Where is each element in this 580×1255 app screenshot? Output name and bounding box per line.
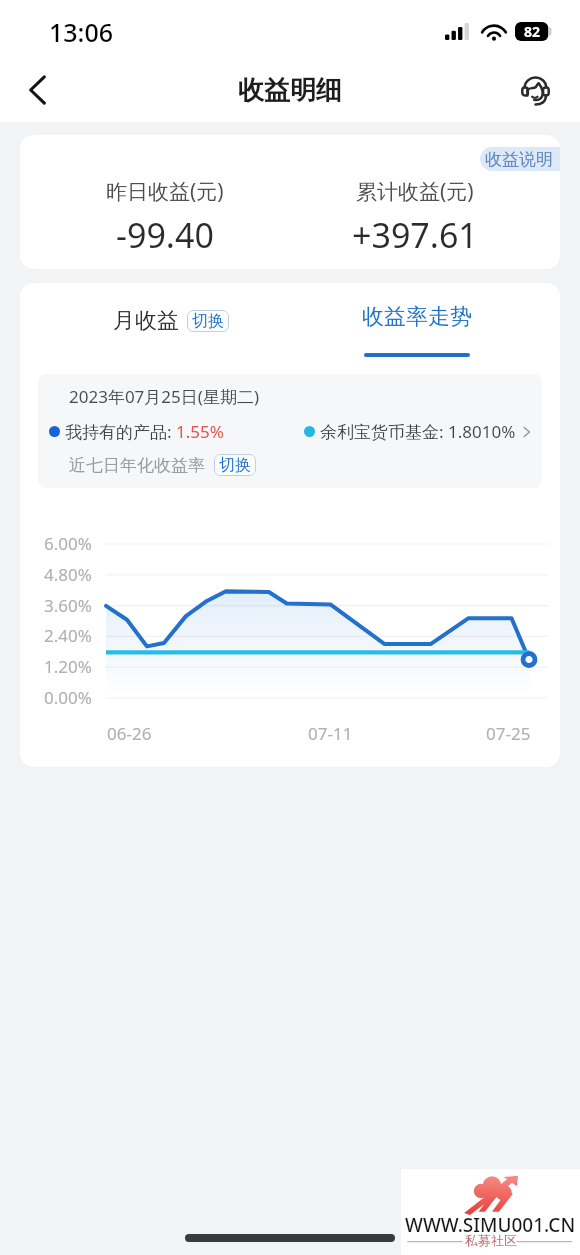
staticText: 累计收益(元): [356, 177, 474, 206]
staticText: 我持有的产品:: [65, 420, 176, 443]
button[interactable]: 切换: [187, 310, 229, 332]
staticText: 收益率走势: [362, 303, 472, 331]
staticText: 4.80%: [44, 563, 92, 586]
button[interactable]: 收益率走势: [290, 283, 560, 374]
staticText: 13:06: [49, 15, 114, 49]
staticText: 0.00%: [44, 686, 92, 709]
staticText: 06-26: [107, 722, 152, 745]
staticText: 07-25: [486, 722, 531, 745]
staticText: 07-11: [308, 722, 353, 745]
staticText: 近七日年化收益率: [69, 455, 205, 476]
staticText: 收益明细: [238, 74, 342, 107]
staticText: +397.61: [352, 212, 478, 258]
staticText: 余利宝货币基金: 1.8010%: [320, 420, 516, 443]
staticText: 6.00%: [44, 532, 92, 555]
staticText: WWW.SIMU001.CN: [405, 1212, 576, 1238]
staticText: 1.20%: [44, 655, 92, 678]
staticText: 昨日收益(元): [106, 177, 224, 206]
staticText: 私募社区: [465, 1232, 517, 1248]
staticText: 月收益: [113, 307, 179, 335]
button[interactable]: 收益说明: [480, 147, 560, 171]
button[interactable]: Customer service: [511, 66, 559, 114]
staticText: 2023年07月25日(星期二): [69, 385, 259, 408]
button[interactable]: 切换: [214, 454, 256, 476]
staticText: 切换: [192, 311, 224, 331]
staticText: 切换: [219, 455, 251, 475]
button[interactable]: 月收益: [20, 283, 290, 374]
staticText: 1.55%: [176, 420, 224, 443]
staticText: -99.40: [116, 212, 214, 258]
staticText: 2.40%: [44, 624, 92, 647]
staticText: 82: [524, 22, 541, 41]
staticText: 收益说明: [485, 149, 553, 170]
staticText: 3.60%: [44, 594, 92, 617]
button[interactable]: Back: [8, 61, 66, 119]
